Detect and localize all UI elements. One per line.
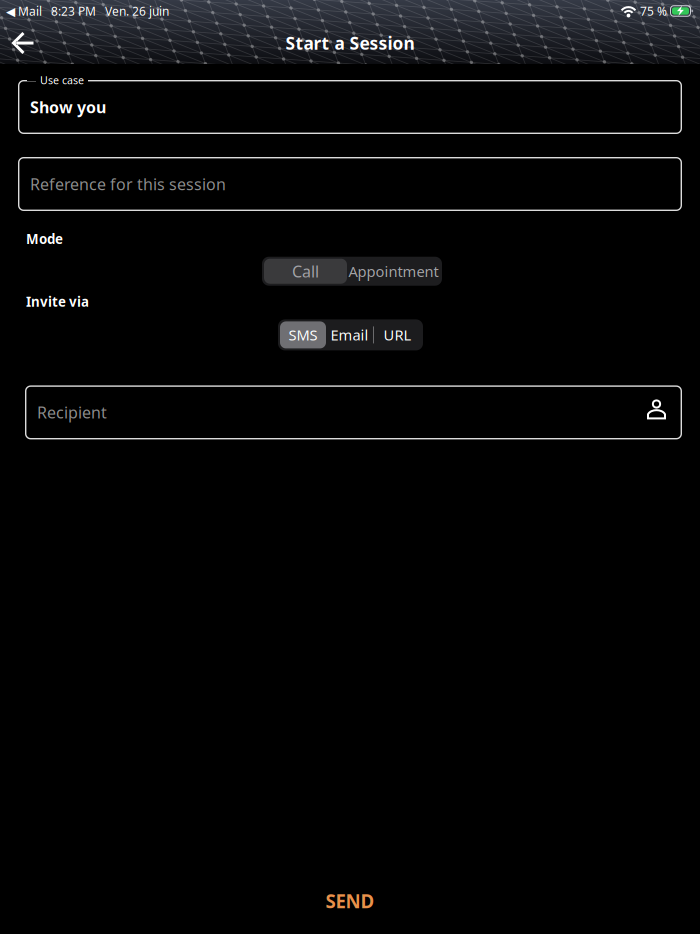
staticText: Call (292, 261, 319, 282)
staticText: Use case (40, 73, 84, 87)
staticText: Recipient (37, 402, 107, 423)
staticText: URL (383, 325, 411, 345)
staticText: SMS (288, 325, 317, 345)
staticText: 75 % (637, 3, 670, 19)
staticText: Email (330, 325, 368, 345)
staticText: Show you (30, 96, 106, 118)
staticText: Invite via (26, 293, 89, 310)
staticText: Reference for this session (30, 173, 226, 195)
button[interactable]: SEND (325, 881, 374, 921)
button[interactable]: Appointment (347, 259, 440, 284)
staticText: Appointment (348, 261, 438, 281)
button[interactable]: SMS (280, 321, 326, 348)
button[interactable]: Call (264, 259, 347, 284)
staticText: Ven. 26 juin (96, 3, 169, 19)
button[interactable]: Email (326, 321, 373, 348)
staticText: Mode (26, 230, 63, 248)
staticText: Start a Session (285, 31, 414, 54)
staticText: 8:23 PM (42, 3, 96, 19)
button[interactable]: Back (0, 22, 45, 64)
staticText: ◀ Mail (6, 3, 42, 19)
staticText: SEND (325, 889, 374, 913)
button[interactable]: URL (374, 321, 421, 348)
